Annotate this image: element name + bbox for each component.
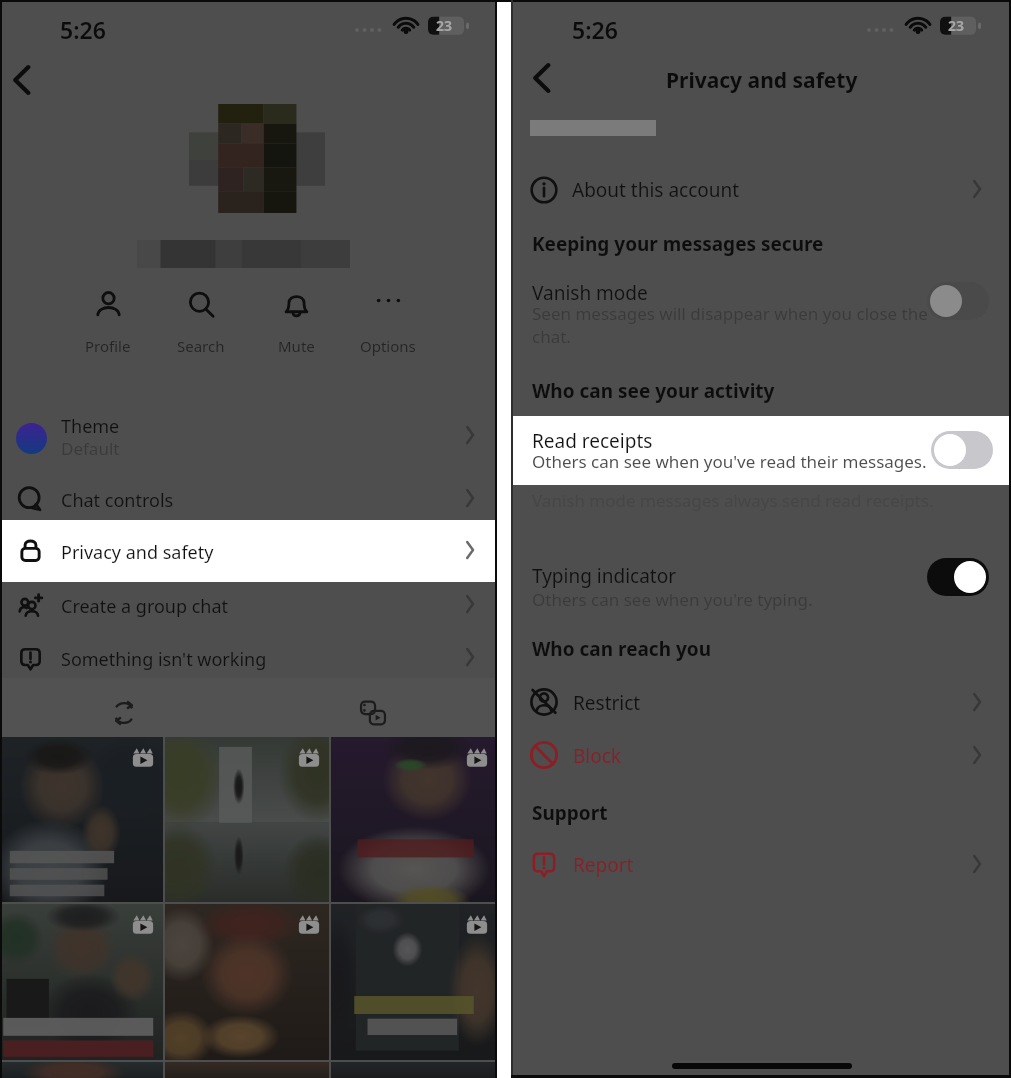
button[interactable]: Back [2, 60, 42, 100]
button[interactable] [165, 1062, 329, 1078]
button[interactable]: Report [512, 838, 1011, 890]
staticText: Others can see when you're typing. [532, 588, 813, 611]
staticText: 5:26 [572, 14, 618, 45]
staticText: About this account [572, 177, 740, 203]
button[interactable]: Read receipts [512, 416, 1011, 485]
staticText: Mute [278, 336, 315, 356]
button[interactable]: Read receipts [931, 431, 993, 469]
staticText: 23 [948, 16, 965, 35]
staticText: Options [360, 336, 416, 356]
button[interactable]: Something isn't working [0, 634, 497, 682]
button[interactable]: Mute [251, 290, 341, 366]
button[interactable] [0, 1062, 163, 1078]
button[interactable]: Posts [0, 690, 248, 736]
button[interactable]: Block [512, 729, 1011, 781]
staticText: Privacy and safety [666, 66, 858, 95]
staticText: Block [573, 743, 622, 769]
staticText: Restrict [573, 690, 641, 716]
button[interactable] [331, 737, 497, 902]
staticText: Who can reach you [532, 636, 712, 662]
staticText: Something isn't working [61, 647, 267, 672]
button[interactable] [165, 737, 329, 902]
staticText: Read receipts [532, 428, 653, 454]
staticText: Privacy and safety [61, 540, 214, 565]
staticText: Seen messages will disappear when you cl… [532, 302, 928, 348]
button[interactable] [331, 1062, 497, 1078]
staticText: Theme [61, 414, 120, 439]
staticText: 5:26 [60, 14, 106, 45]
staticText: Others can see when you've read their me… [532, 450, 927, 473]
button[interactable]: Vanish mode [512, 271, 1011, 353]
button[interactable] [165, 904, 329, 1060]
button[interactable]: Profile [63, 290, 153, 366]
staticText: 23 [436, 16, 453, 35]
button[interactable]: Search [156, 290, 246, 366]
staticText: Default [61, 437, 120, 460]
staticText: Vanish mode [532, 280, 648, 306]
button[interactable] [331, 904, 497, 1060]
button[interactable]: Typing indicator [927, 558, 989, 596]
button[interactable]: Privacy and safety [0, 520, 497, 582]
button[interactable]: Typing indicator [512, 553, 1011, 613]
staticText: Report [573, 852, 634, 878]
button[interactable]: Create a group chat [0, 582, 497, 630]
staticText: Support [532, 800, 608, 826]
button[interactable]: Back [522, 58, 562, 98]
button[interactable]: Chat controls [0, 473, 497, 520]
button[interactable] [0, 904, 163, 1060]
staticText: Who can see your activity [532, 378, 775, 404]
button[interactable]: Restrict [512, 676, 1011, 728]
button[interactable] [0, 737, 163, 902]
button[interactable]: Theme [0, 410, 497, 468]
staticText: Search [177, 336, 225, 356]
button[interactable]: Vanish mode [927, 282, 989, 320]
button[interactable]: Options [343, 290, 433, 366]
staticText: Keeping your messages secure [532, 231, 824, 257]
button[interactable] [512, 416, 1011, 485]
button[interactable]: About this account [512, 165, 1011, 213]
staticText: Profile [85, 336, 131, 356]
staticText: Create a group chat [61, 594, 229, 619]
staticText: Typing indicator [532, 563, 677, 589]
staticText: Chat controls [61, 488, 174, 513]
button[interactable]: Reels [248, 690, 497, 736]
